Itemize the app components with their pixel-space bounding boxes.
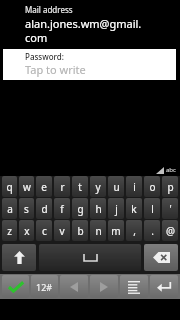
button[interactable]: @ (162, 220, 178, 241)
staticText: i (133, 180, 136, 194)
staticText: g (77, 202, 84, 216)
staticText: , (133, 224, 136, 238)
staticText: r (60, 180, 65, 194)
staticText: x (24, 224, 30, 238)
staticText: u (113, 180, 120, 194)
staticText: o (149, 180, 156, 194)
button[interactable]: v (54, 220, 70, 241)
button[interactable]: t (72, 176, 88, 197)
button[interactable]: Options menu (120, 275, 148, 298)
staticText: p (167, 180, 174, 194)
button[interactable]: g (72, 198, 88, 219)
staticText: f (60, 202, 64, 216)
button[interactable]: n (90, 220, 106, 241)
button[interactable]: f (54, 198, 70, 219)
button[interactable]: k (126, 198, 142, 219)
button[interactable]: p (162, 176, 178, 197)
staticText: q (6, 180, 13, 194)
staticText: abc (166, 166, 176, 174)
button[interactable]: , (126, 220, 142, 241)
button[interactable]: c (36, 220, 52, 241)
button[interactable]: b (72, 220, 88, 241)
staticText: v (59, 224, 65, 238)
button[interactable]: l (144, 198, 160, 219)
staticText: m (111, 224, 121, 238)
button[interactable]: d (36, 198, 52, 219)
staticText: k (131, 202, 137, 216)
button[interactable]: Shift (2, 244, 36, 271)
staticText: b (77, 224, 84, 238)
staticText: h (95, 202, 102, 216)
button[interactable]: y (90, 176, 106, 197)
button[interactable]: a (2, 198, 17, 219)
button[interactable]: h (90, 198, 106, 219)
staticText: y (95, 180, 101, 194)
staticText: t (78, 180, 82, 194)
button[interactable]: s (19, 198, 34, 219)
button[interactable]: u (108, 176, 124, 197)
staticText: s (24, 202, 29, 216)
staticText: alan.jones.wm@gmail. com (25, 16, 142, 45)
staticText: Tap to write (25, 62, 86, 77)
button[interactable]: . (144, 220, 160, 241)
staticText: @ (166, 224, 175, 238)
button[interactable]: Backspace (144, 244, 178, 271)
button[interactable]: i (126, 176, 142, 197)
staticText: c (42, 224, 47, 238)
staticText: w (23, 180, 31, 194)
button[interactable]: r (54, 176, 70, 197)
staticText: e (41, 180, 47, 194)
button[interactable]: Space (39, 244, 141, 271)
staticText: . (151, 224, 154, 238)
button[interactable]: Enter (150, 275, 178, 298)
staticText: d (41, 202, 48, 216)
button[interactable]: w (19, 176, 34, 197)
button[interactable]: ' (162, 198, 178, 219)
staticText: j (115, 202, 118, 216)
button[interactable]: Move cursor left (60, 275, 88, 298)
button[interactable]: OK (2, 275, 29, 298)
button[interactable]: q (2, 176, 17, 197)
staticText: l (151, 202, 154, 216)
button[interactable]: x (19, 220, 34, 241)
staticText: 12# (36, 281, 53, 293)
staticText: Mail address (25, 4, 73, 15)
button[interactable]: Move cursor right (90, 275, 118, 298)
button[interactable]: j (108, 198, 124, 219)
button[interactable]: e (36, 176, 52, 197)
button[interactable]: Password: (3, 49, 176, 80)
button[interactable]: m (108, 220, 124, 241)
staticText: z (7, 224, 12, 238)
button[interactable]: o (144, 176, 160, 197)
button[interactable]: Numbers and symbols (31, 275, 58, 298)
button[interactable]: z (2, 220, 17, 241)
staticText: Password: (25, 51, 64, 62)
staticText: ' (169, 202, 172, 216)
staticText: n (95, 224, 102, 238)
staticText: a (7, 202, 13, 216)
